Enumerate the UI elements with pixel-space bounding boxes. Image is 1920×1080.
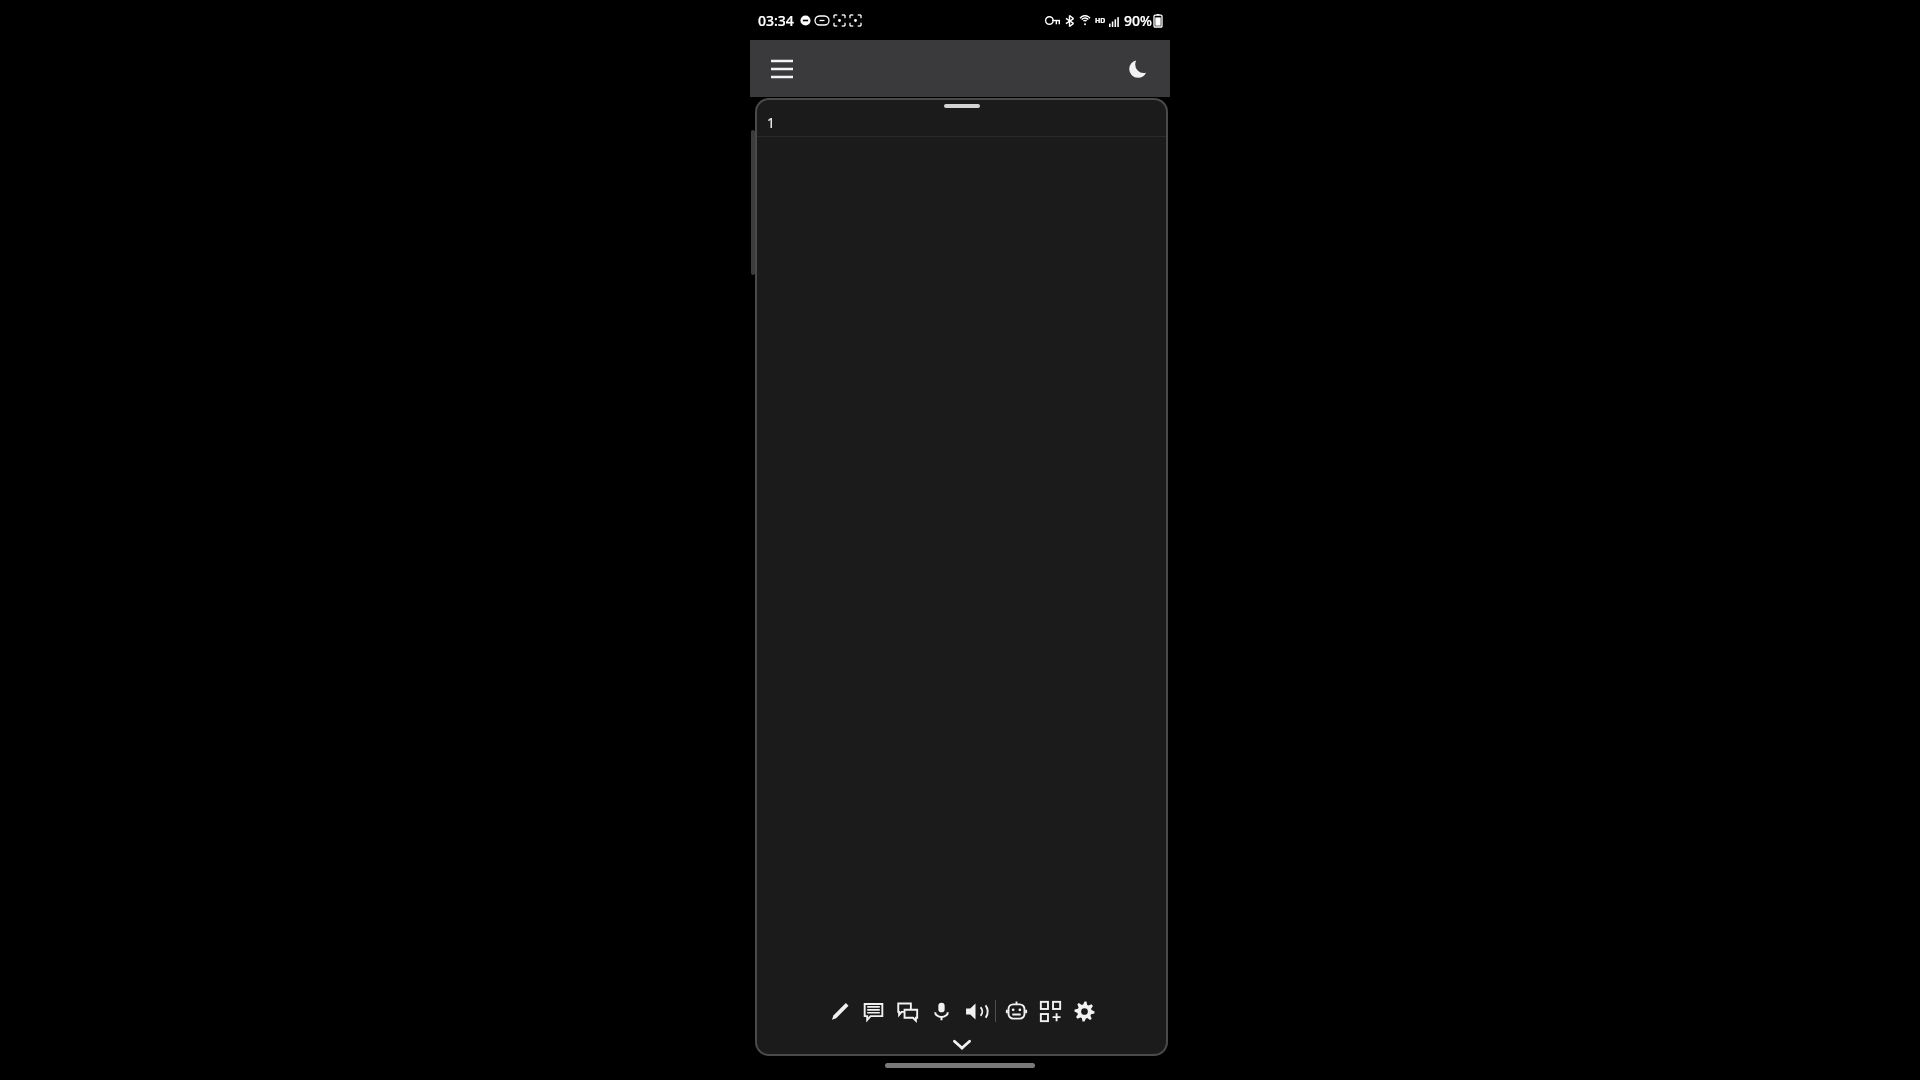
button[interactable]: Settings: [1067, 991, 1101, 1031]
button[interactable]: Resize panel: [944, 104, 980, 108]
staticText: HD: [1095, 16, 1106, 26]
staticText: 90%: [1124, 11, 1152, 30]
button[interactable]: Toggle dark mode: [1116, 47, 1160, 91]
staticText: 1: [767, 113, 776, 132]
button[interactable]: Scan code: [1033, 991, 1067, 1031]
button[interactable]: Text note: [856, 991, 890, 1031]
button[interactable]: Voice input: [924, 991, 958, 1031]
button[interactable]: Assistant: [999, 991, 1033, 1031]
button[interactable]: Draw: [822, 991, 856, 1031]
button[interactable]: Collapse panel: [757, 1034, 1166, 1054]
button[interactable]: Chat: [890, 991, 924, 1031]
staticText: 03:34: [758, 11, 794, 30]
button[interactable]: Open navigation menu: [760, 47, 804, 91]
button[interactable]: Read aloud: [958, 991, 992, 1031]
